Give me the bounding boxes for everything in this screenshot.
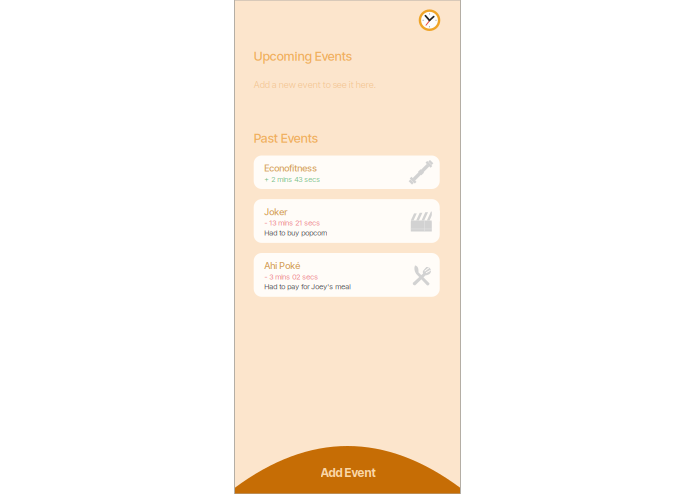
staticText: Joker — [264, 206, 287, 217]
staticText: Upcoming Events — [254, 48, 352, 64]
staticText: Had to buy popcorn — [264, 228, 327, 237]
staticText: + 2 mins 43 secs — [264, 175, 320, 184]
button[interactable]: Add Event — [234, 446, 460, 494]
button[interactable]: Ahi Poké — [254, 253, 440, 297]
staticText: Ahi Poké — [264, 260, 300, 271]
staticText: Add Event — [320, 465, 375, 480]
staticText: - 13 mins 21 secs — [264, 218, 320, 227]
staticText: - 3 mins 02 secs — [264, 272, 318, 281]
staticText: Past Events — [254, 130, 318, 146]
button[interactable]: Joker — [254, 199, 440, 243]
staticText: Add a new event to see it here. — [254, 79, 376, 90]
button[interactable]: Econofitness — [254, 155, 440, 189]
staticText: Had to pay for Joey's meal — [264, 282, 350, 291]
staticText: Econofitness — [264, 162, 317, 174]
